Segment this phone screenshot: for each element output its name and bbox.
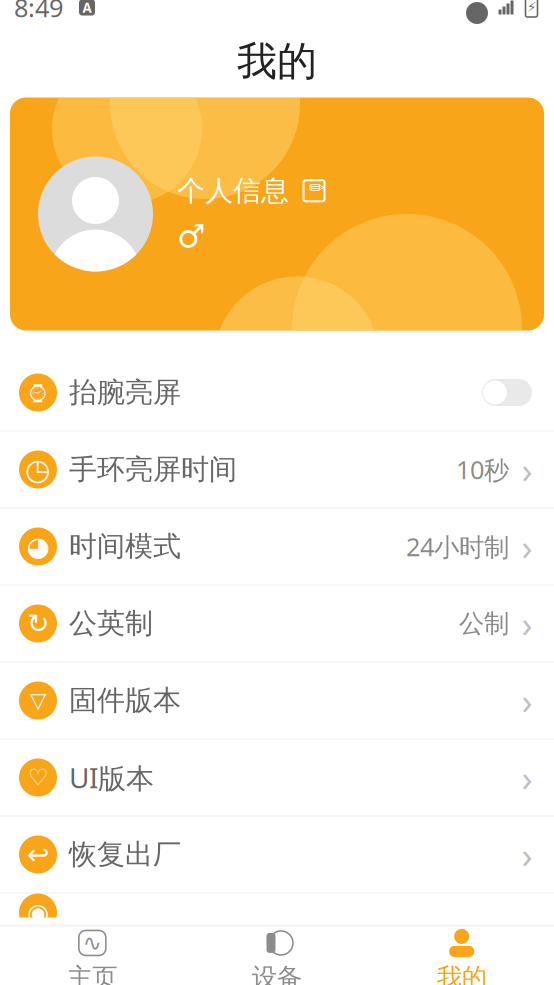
staticText: ›	[521, 600, 532, 647]
staticText: 8:49	[14, 0, 63, 24]
button[interactable]: ◷	[0, 431, 554, 508]
button[interactable]: ◕	[0, 508, 554, 585]
staticText: ⌚︎	[24, 374, 51, 410]
staticText: ◕	[26, 531, 49, 562]
staticText: ›	[521, 446, 532, 493]
staticText: A	[82, 0, 91, 16]
button[interactable]: ↩	[0, 816, 554, 893]
staticText: 24小时制	[406, 530, 509, 563]
staticText: ◷	[25, 453, 51, 486]
staticText: ✏︎	[308, 176, 325, 199]
staticText: ♂	[177, 218, 206, 254]
staticText: ↩	[27, 839, 49, 870]
staticText: 手环亮屏时间	[69, 452, 237, 487]
button[interactable]: ∿	[0, 926, 185, 985]
staticText: 恢复出厂	[69, 837, 181, 872]
staticText: ›	[521, 754, 532, 801]
staticText: ›	[521, 523, 532, 570]
staticText: 主页	[67, 962, 117, 985]
staticText: ♡	[28, 765, 48, 790]
staticText: UI版本	[69, 759, 154, 796]
staticText: ⚡︎	[527, 0, 536, 15]
staticText: 个人信息	[177, 174, 289, 208]
staticText: ▽	[30, 688, 46, 713]
staticText: ↻	[27, 608, 49, 639]
staticText: 固件版本	[69, 683, 181, 718]
staticText: 抬腕亮屏	[69, 375, 181, 410]
staticText: ∿	[83, 930, 102, 956]
staticText: ›	[521, 831, 532, 878]
button[interactable]: 设备	[185, 926, 369, 985]
button[interactable]: ⌚︎	[0, 354, 554, 431]
button[interactable]: ▽	[0, 662, 554, 739]
staticText: 时间模式	[69, 529, 181, 564]
staticText: 我的	[437, 962, 487, 985]
staticText: ◉	[27, 898, 49, 927]
staticText: 公英制	[69, 606, 153, 641]
button[interactable]: 我的	[369, 926, 554, 985]
staticText: 设备	[252, 962, 302, 985]
staticText: 10秒	[456, 453, 509, 486]
button[interactable]: 个人信息	[0, 97, 554, 330]
button[interactable]: ♡	[0, 739, 554, 816]
staticText: ›	[521, 677, 532, 724]
staticText: 我的	[237, 37, 317, 86]
button[interactable]: ↻	[0, 585, 554, 662]
staticText: 公制	[459, 608, 509, 639]
